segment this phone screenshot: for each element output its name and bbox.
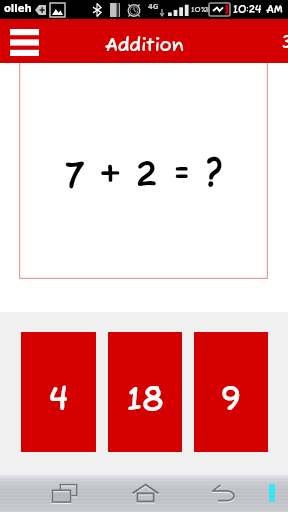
staticText: 7 + 2 = ?	[64, 153, 223, 201]
button[interactable]: 4	[21, 332, 96, 452]
staticText: 10:24 AM	[233, 3, 283, 17]
staticText: 18	[127, 380, 164, 421]
staticText: 9	[221, 380, 241, 421]
button[interactable]: Home	[112, 474, 178, 512]
button[interactable]: Open navigation menu	[0, 19, 48, 63]
staticText: 4G	[148, 3, 159, 11]
button[interactable]: Recent apps	[32, 474, 96, 512]
staticText: 4	[49, 380, 69, 421]
button[interactable]: 18	[108, 332, 182, 452]
button[interactable]: 9	[194, 332, 268, 452]
staticText: 3	[282, 34, 288, 54]
button[interactable]: More options	[256, 474, 288, 512]
staticText: Addition	[105, 35, 184, 57]
button[interactable]: Back	[192, 474, 256, 512]
staticText: olleh	[4, 3, 32, 15]
staticText: 10%	[191, 5, 208, 15]
